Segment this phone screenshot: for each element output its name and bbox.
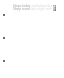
staticText: last night rest: [30, 7, 52, 11]
staticText: walked so far: [31, 4, 52, 8]
button[interactable]: Steps today: [13, 4, 57, 8]
staticText: 12: [53, 5, 57, 9]
button[interactable]: Sleep score: [13, 7, 57, 11]
staticText: 34: [53, 8, 57, 12]
staticText: Sleep score: [13, 7, 30, 11]
staticText: Steps today: [13, 4, 31, 8]
